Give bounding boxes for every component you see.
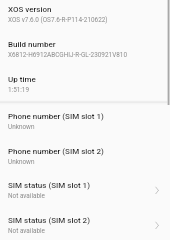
button[interactable]: Phone number (SIM slot 2): [0, 139, 170, 174]
other: Open SIM status details: [151, 185, 163, 197]
staticText: 1:51:19: [8, 86, 30, 94]
staticText: Unknown: [8, 158, 35, 166]
button[interactable]: XOS version: [0, 0, 170, 32]
staticText: Phone number (SIM slot 1): [8, 112, 104, 121]
staticText: Up time: [8, 75, 36, 84]
staticText: X6812-H6912ABCGHIJ-R-GL-230921V810: [8, 51, 127, 59]
staticText: XOS v7.6.0 (OS7.6-R-P114-210622): [8, 16, 108, 24]
staticText: XOS version: [8, 5, 52, 14]
other: Open SIM status details: [151, 220, 163, 232]
button[interactable]: Phone number (SIM slot 1): [0, 104, 170, 139]
staticText: Phone number (SIM slot 2): [8, 147, 104, 156]
staticText: Unknown: [8, 123, 35, 131]
staticText: Not available: [8, 192, 45, 200]
button[interactable]: SIM status (SIM slot 2): [0, 208, 170, 240]
staticText: SIM status (SIM slot 2): [8, 216, 90, 225]
staticText: Build number: [8, 40, 56, 49]
button[interactable]: SIM status (SIM slot 1): [0, 173, 170, 208]
staticText: Not available: [8, 227, 45, 235]
staticText: SIM status (SIM slot 1): [8, 181, 90, 190]
button[interactable]: Up time: [0, 67, 170, 102]
button[interactable]: Build number: [0, 32, 170, 67]
